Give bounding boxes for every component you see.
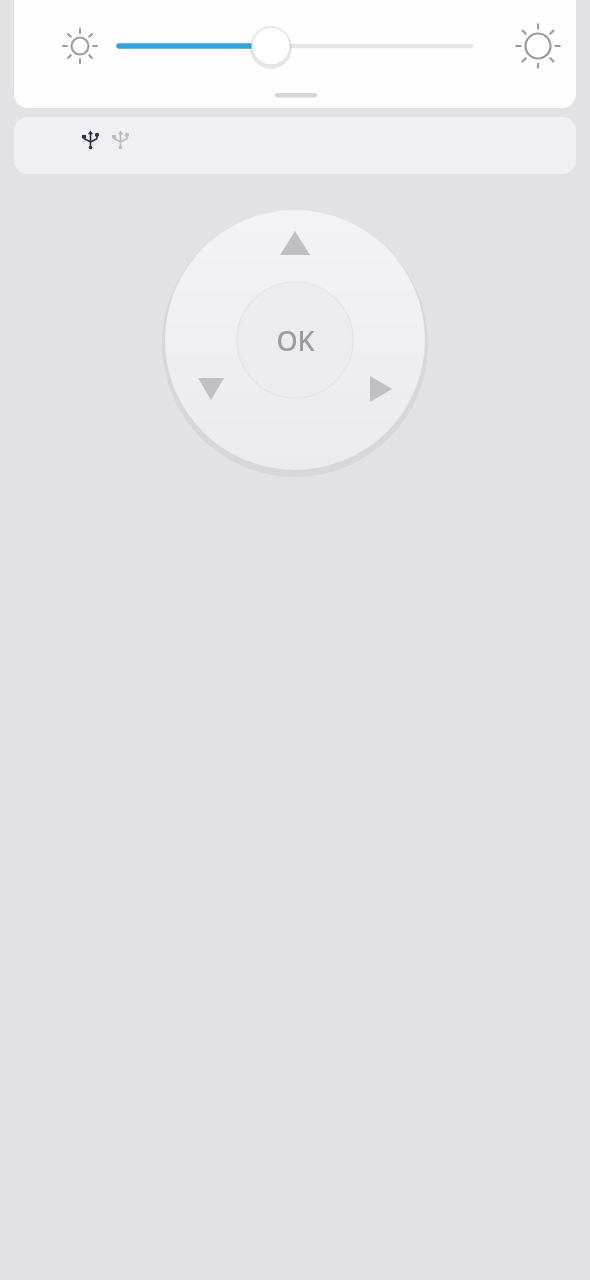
button[interactable]: Brightness <box>54 20 444 64</box>
button[interactable]: Direction pad <box>160 205 430 475</box>
staticText: OK <box>276 322 315 359</box>
button[interactable]: USB connections <box>14 117 576 174</box>
